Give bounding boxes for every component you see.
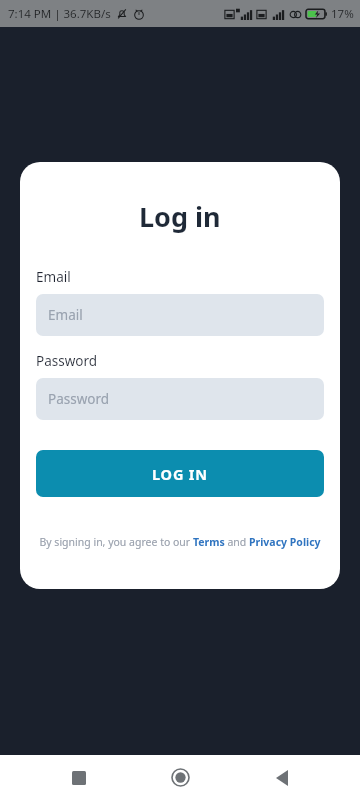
button[interactable]: By signing in, you agree to our Terms an… [36,535,324,549]
staticText: LOG IN [152,464,208,484]
button[interactable]: LOG IN [36,450,324,497]
staticText: Password [36,352,98,370]
staticText: By signing in, you agree to our Terms an… [36,535,324,549]
button[interactable]: Password [36,378,324,420]
staticText: 7:14 PM | 36.7KB/s [8,6,111,22]
staticText: Password [48,390,110,408]
button[interactable]: Recent apps [56,755,102,800]
staticText: Email [36,268,71,286]
staticText: Log in [139,198,221,235]
button[interactable]: Home [157,755,203,800]
button[interactable]: Back [259,755,305,800]
staticText: 17% [331,6,354,22]
button[interactable]: Email [36,294,324,336]
staticText: Email [48,306,83,324]
